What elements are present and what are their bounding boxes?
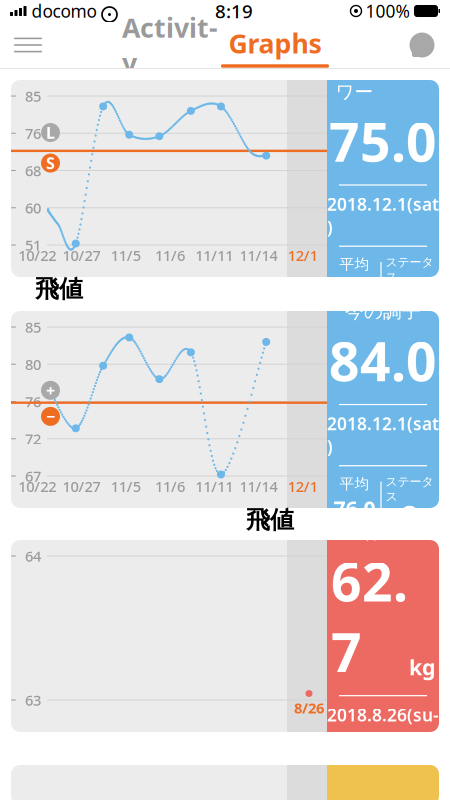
staticText: 平均 — [339, 475, 369, 493]
staticText: 8:19 — [215, 0, 253, 23]
button[interactable]: Graphs — [220, 22, 330, 68]
staticText: 63 — [25, 690, 41, 710]
staticText: 2018.8.26(sun) — [327, 703, 439, 749]
staticText: 62.7 — [331, 545, 408, 687]
staticText: 11/6 — [155, 245, 185, 265]
button[interactable] — [11, 765, 439, 800]
staticText: 11/5 — [111, 245, 141, 265]
staticText: 12/1 — [288, 476, 318, 496]
button[interactable]: 85 — [11, 80, 439, 277]
button[interactable]: 85 — [11, 311, 439, 508]
staticText: 平均 — [339, 255, 369, 273]
staticText: kg — [409, 653, 435, 681]
staticText: 85 — [25, 86, 41, 106]
staticText: ステータス — [386, 474, 434, 504]
staticText: 85 — [25, 317, 41, 337]
staticText: 10/22 — [18, 476, 56, 496]
staticText: 飛値 — [246, 505, 294, 535]
staticText: 67 — [25, 466, 41, 486]
staticText: 11/11 — [195, 476, 233, 496]
staticText: 75.0 — [329, 106, 437, 176]
staticText: 11/14 — [240, 245, 278, 265]
staticText: L — [46, 122, 55, 143]
staticText: 体重 — [364, 520, 402, 543]
staticText: Activity — [122, 10, 218, 80]
staticText: 10/27 — [62, 245, 100, 265]
staticText: 12/1 — [288, 245, 318, 265]
staticText: 80 — [25, 354, 41, 374]
staticText: 11/6 — [155, 476, 185, 496]
staticText: 2018.12.1(sat) — [327, 193, 439, 239]
button[interactable]: Menu — [0, 23, 56, 67]
staticText: 64 — [25, 546, 41, 566]
staticText: 60 — [25, 198, 41, 217]
staticText: ステータス — [386, 255, 434, 284]
staticText: S — [46, 152, 55, 174]
staticText: + — [406, 505, 414, 524]
button[interactable]: 64 — [11, 540, 439, 732]
staticText: + — [46, 380, 55, 401]
staticText: Graphs — [228, 25, 321, 61]
staticText: 84.0 — [329, 325, 437, 396]
staticText: 76 — [25, 392, 41, 411]
staticText: 100% — [365, 0, 409, 22]
staticText: 10/22 — [18, 245, 56, 265]
staticText: 飛値 — [35, 274, 83, 304]
button[interactable]: Activity — [120, 23, 220, 67]
staticText: 8/26 — [294, 698, 324, 717]
staticText: 11/11 — [195, 245, 233, 265]
staticText: + — [406, 505, 414, 524]
staticText: 11/14 — [240, 476, 278, 496]
button[interactable]: Messages — [394, 23, 450, 67]
staticText: 73.0 — [333, 274, 375, 303]
staticText: 76.0 — [333, 494, 375, 522]
staticText: 2018.12.1(sat) — [327, 412, 439, 458]
staticText: 11/5 — [111, 476, 141, 496]
staticText: docomo — [31, 0, 96, 22]
staticText: 今の調子 — [345, 300, 421, 323]
staticText: 72 — [25, 429, 41, 448]
staticText: トータルパワー — [335, 58, 430, 104]
staticText: − — [46, 406, 55, 427]
staticText: 10/27 — [62, 476, 100, 496]
staticText: 51 — [25, 235, 41, 255]
staticText: 68 — [25, 161, 41, 180]
staticText: 76 — [25, 123, 41, 143]
